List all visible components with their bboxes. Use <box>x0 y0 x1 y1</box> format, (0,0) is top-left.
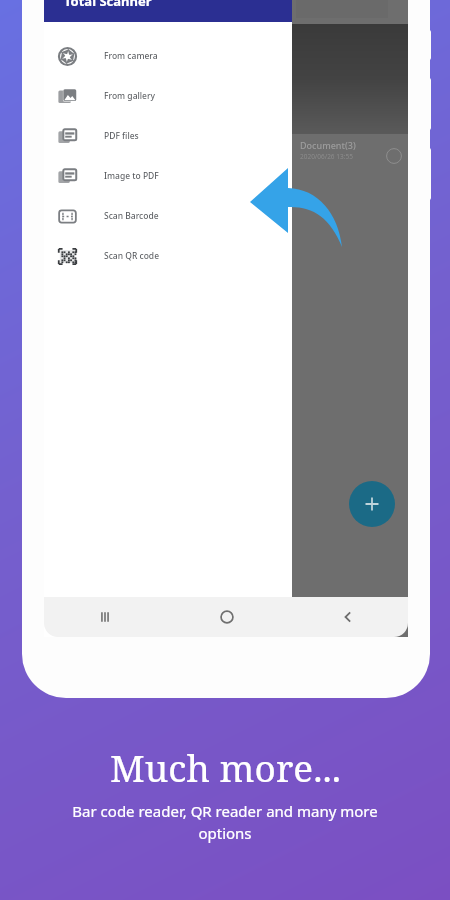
staticText: Much more... <box>110 742 341 792</box>
staticText: Bar code reader, QR reader and many more… <box>45 801 405 844</box>
staticText: From camera <box>104 50 158 62</box>
staticText: PDF files <box>104 130 139 142</box>
button[interactable]: PDF files <box>44 116 292 156</box>
staticText: Document(3) <box>300 139 356 151</box>
button[interactable]: From camera <box>44 36 292 76</box>
staticText: Total Scanner <box>64 0 152 10</box>
staticText: 2020/06/26 13:55 <box>300 152 353 161</box>
staticText: Image to PDF <box>104 170 159 182</box>
staticText: From gallery <box>104 90 156 102</box>
staticText: Scan Barcode <box>104 210 159 222</box>
button[interactable]: Scan QR code <box>44 236 292 276</box>
button[interactable]: Back <box>287 597 408 637</box>
button[interactable]: Image to PDF <box>44 156 292 196</box>
button[interactable]: Home <box>166 597 287 637</box>
button[interactable]: Recent apps <box>44 597 166 637</box>
button[interactable]: From gallery <box>44 76 292 116</box>
staticText: Scan QR code <box>104 250 160 262</box>
button[interactable]: Scan Barcode <box>44 196 292 236</box>
button[interactable]: Add <box>349 481 395 527</box>
